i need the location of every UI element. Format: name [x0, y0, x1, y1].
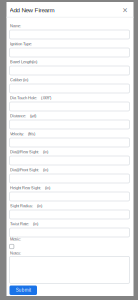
button[interactable]: Submit: [9, 285, 37, 295]
staticText: Name:: [10, 24, 21, 28]
staticText: Height Rear Sight: (in): [10, 186, 50, 190]
staticText: Dia@Rear Sight: (in): [10, 150, 48, 154]
staticText: Submit: [16, 288, 31, 293]
staticText: Dia@Front Sight: (in): [10, 168, 48, 172]
staticText: Add New Firearm: [9, 7, 54, 13]
staticText: Metric:: [10, 237, 21, 241]
button[interactable]: Close: [119, 4, 131, 16]
staticText: Twist Rate: (in): [10, 222, 38, 226]
staticText: Dia Touch Hole: (.009"): [10, 96, 51, 100]
button[interactable]: Metric: [9, 244, 14, 249]
staticText: Sight Radius: (in): [10, 204, 42, 208]
staticText: Ignition Type:: [10, 42, 32, 46]
staticText: Distance: (yd): [10, 114, 36, 118]
staticText: Barrel Length(in): [10, 60, 37, 64]
staticText: Caliber (in): [10, 78, 28, 82]
staticText: Notes:: [10, 251, 21, 255]
staticText: Velocity: (ft/s): [10, 132, 35, 136]
staticText: ×: [122, 5, 127, 15]
